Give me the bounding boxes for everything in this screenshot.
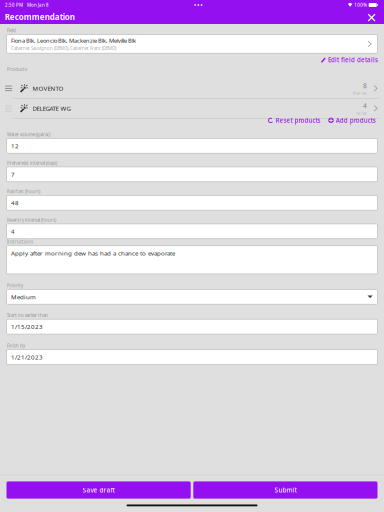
staticText: 48 [11,199,19,207]
button[interactable]: 7 [0,167,384,182]
staticText: Add products [336,116,376,124]
button[interactable]: MOVENTO [0,79,384,98]
button[interactable]: 1/21/2023 [0,350,384,364]
staticText: 8 [363,81,367,90]
button[interactable]: Fiona Blk, Leoncio Blk, Mackenzie Blk, M… [0,34,384,53]
staticText: Instructions [7,239,33,245]
staticText: Recommendation [5,12,75,22]
button[interactable]: Reset products [268,116,321,127]
staticText: Apply after morning dew has had a chance… [11,249,175,257]
button[interactable]: Save draft [6,481,191,499]
button[interactable]: Medium [0,289,384,304]
button[interactable]: 4 [0,224,384,239]
staticText: 1/21/2023 [11,353,43,361]
staticText: Priority [7,282,23,288]
button[interactable]: 48 [0,195,384,210]
staticText: Preharvest interval (days) [7,160,57,166]
button[interactable]: Add products [328,116,384,127]
staticText: Field [7,28,16,34]
staticText: MOVENTO [33,84,64,93]
staticText: Reset products [276,116,321,124]
staticText: Save draft [83,486,115,494]
staticText: Finish by [7,343,25,349]
staticText: Start no earlier than [7,312,48,318]
staticText: Cabernet Sauvignon (DEMO), Cabernet Fran… [11,45,116,51]
staticText: 100% [354,2,367,8]
staticText: Edit field details [328,56,378,64]
staticText: Rainfast (hours) [7,188,40,194]
button[interactable]: Apply after morning dew has had a chance… [0,246,384,274]
staticText: 12 [11,142,19,150]
button[interactable]: 12 [0,138,384,153]
button[interactable]: 1/15/2023 [0,319,384,334]
staticText: 7 [11,170,15,178]
staticText: oz / ac [356,110,367,116]
staticText: Mon Jan 8 [27,2,49,8]
staticText: Fiona Blk, Leoncio Blk, Mackenzie Blk, M… [11,37,136,44]
staticText: Submit [274,486,296,494]
staticText: Re-entry interval (hours) [7,217,56,223]
staticText: fl oz / ac [353,90,367,96]
staticText: 1/15/2023 [11,322,43,331]
staticText: 4 [363,101,367,110]
staticText: DELEGATE WG [33,104,71,113]
button[interactable]: Edit field details [317,53,384,66]
staticText: Medium [11,293,36,301]
staticText: 2:50 PM [5,2,23,8]
button[interactable]: DELEGATE WG [0,99,384,118]
staticText: Water volume (gal/ac) [7,131,50,137]
staticText: Products [7,66,27,72]
button[interactable]: Submit [193,481,377,499]
staticText: 4 [11,227,15,235]
button[interactable]: Close [364,10,380,24]
